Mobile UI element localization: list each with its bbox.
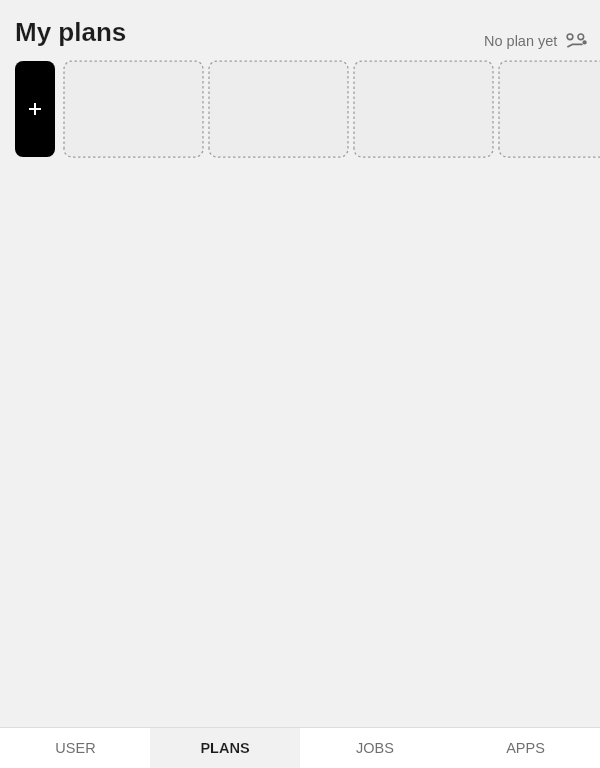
- button[interactable]: JOBS: [300, 728, 450, 768]
- staticText: APPS: [506, 740, 545, 756]
- staticText: USER: [55, 740, 96, 756]
- button[interactable]: No plan yet: [484, 29, 600, 46]
- staticText: No plan yet: [484, 33, 558, 49]
- button[interactable]: Empty plan slot: [354, 61, 493, 157]
- button[interactable]: Empty plan slot: [209, 61, 348, 157]
- button[interactable]: Add plan: [15, 61, 55, 157]
- button[interactable]: APPS: [450, 728, 600, 768]
- staticText: JOBS: [356, 740, 394, 756]
- staticText: PLANS: [200, 740, 250, 756]
- button[interactable]: Empty plan slot: [64, 61, 203, 157]
- button[interactable]: PLANS: [150, 728, 300, 768]
- staticText: My plans: [15, 17, 127, 46]
- button[interactable]: Empty plan slot: [499, 61, 600, 157]
- button[interactable]: USER: [0, 728, 150, 768]
